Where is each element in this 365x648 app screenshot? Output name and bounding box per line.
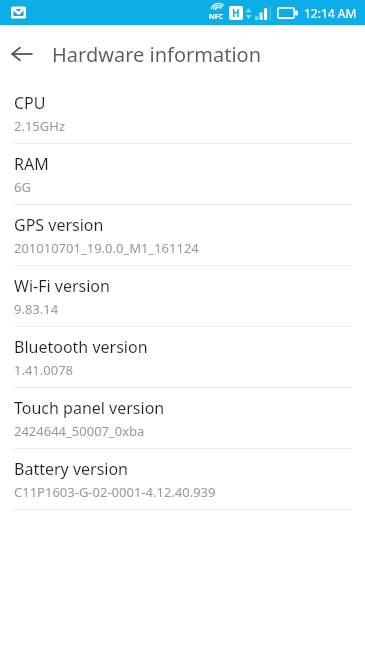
staticText: H	[232, 6, 240, 20]
button[interactable]: RAM	[0, 144, 365, 204]
button[interactable]: Back	[0, 32, 44, 76]
staticText: CPU	[14, 92, 46, 114]
staticText: 12:14 AM	[304, 5, 357, 21]
button[interactable]: Wi-Fi version	[0, 266, 365, 326]
button[interactable]: GPS version	[0, 205, 365, 265]
staticText: 9.83.14	[14, 300, 59, 318]
staticText: 2.15GHz	[14, 117, 65, 135]
staticText: 201010701_19.0.0_M1_161124	[14, 239, 199, 257]
staticText: Bluetooth version	[14, 336, 148, 358]
staticText: 1.41.0078	[14, 361, 74, 379]
staticText: Battery version	[14, 458, 129, 480]
button[interactable]: Bluetooth version	[0, 327, 365, 387]
staticText: Hardware information	[52, 41, 261, 68]
staticText: RAM	[14, 153, 49, 175]
staticText: GPS version	[14, 214, 104, 236]
staticText: 6G	[14, 178, 31, 196]
staticText: Touch panel version	[14, 397, 165, 419]
button[interactable]: Touch panel version	[0, 388, 365, 448]
staticText: C11P1603-G-02-0001-4.12.40.939	[14, 483, 216, 501]
button[interactable]: Battery version	[0, 449, 365, 509]
staticText: Wi-Fi version	[14, 275, 110, 297]
staticText: 2424644_50007_0xba	[14, 422, 145, 440]
button[interactable]: CPU	[0, 83, 365, 143]
staticText: NFC	[209, 12, 224, 22]
